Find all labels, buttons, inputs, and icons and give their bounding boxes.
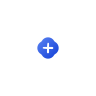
button[interactable]: Add [36,36,60,60]
